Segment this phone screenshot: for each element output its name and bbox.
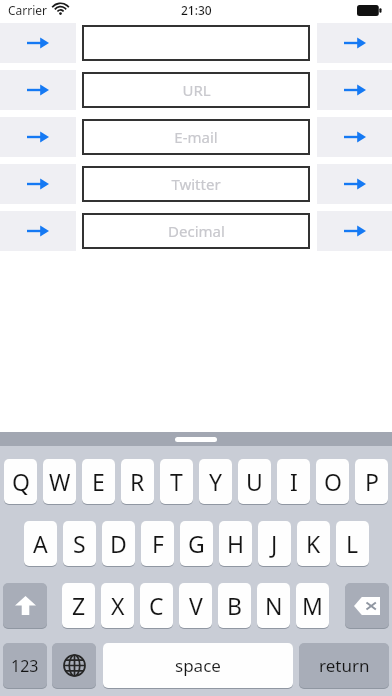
button[interactable]: Previous field	[0, 70, 76, 110]
button[interactable]: Next field	[317, 23, 392, 63]
button[interactable]: J	[258, 521, 291, 566]
button[interactable]	[3, 583, 47, 628]
staticText: Y	[209, 466, 223, 497]
staticText: space	[175, 654, 221, 677]
other: Shift	[3, 583, 47, 629]
button[interactable]: E	[82, 459, 115, 504]
staticText: N	[265, 590, 283, 621]
other: Change keyboard language	[52, 643, 96, 689]
staticText: O	[324, 466, 342, 497]
staticText: B	[227, 590, 242, 621]
staticText: X	[111, 590, 125, 621]
button[interactable]: Previous field	[0, 117, 76, 157]
button[interactable]: F	[141, 521, 174, 566]
button[interactable]: URL	[82, 72, 310, 108]
staticText: L	[346, 528, 359, 559]
staticText: U	[246, 466, 263, 497]
button[interactable]: O	[316, 459, 349, 504]
staticText: G	[188, 528, 205, 559]
staticText: V	[189, 590, 203, 621]
button[interactable]: Previous field	[0, 164, 76, 204]
staticText: I	[290, 466, 298, 497]
staticText: Carrier	[8, 2, 48, 18]
button[interactable]: space	[103, 643, 293, 688]
staticText: URL	[182, 80, 211, 100]
staticText: J	[271, 528, 278, 559]
button[interactable]: Next field	[317, 117, 392, 157]
staticText: S	[73, 528, 86, 559]
button[interactable]: Next field	[317, 211, 392, 251]
button[interactable]: 123	[3, 643, 47, 688]
button[interactable]: Previous field	[0, 211, 76, 251]
staticText: F	[152, 528, 164, 559]
staticText: 21:30	[181, 2, 212, 18]
staticText: Q	[12, 466, 30, 497]
button[interactable]	[52, 643, 96, 688]
staticText: M	[302, 590, 323, 621]
staticText: W	[49, 466, 71, 497]
staticText: A	[33, 528, 48, 559]
button[interactable]: T	[160, 459, 193, 504]
button[interactable]: Y	[199, 459, 232, 504]
button[interactable]: H	[219, 521, 252, 566]
staticText: Twitter	[171, 174, 221, 194]
staticText: C	[149, 590, 164, 621]
other: Backspace	[345, 583, 389, 629]
button[interactable]: return	[299, 643, 389, 688]
button[interactable]: P	[355, 459, 388, 504]
button[interactable]: M	[296, 583, 329, 628]
button[interactable]: Previous field	[0, 23, 76, 63]
button[interactable]: Next field	[317, 70, 392, 110]
staticText: Z	[72, 590, 86, 621]
button[interactable]: D	[102, 521, 135, 566]
button[interactable]: L	[336, 521, 369, 566]
staticText: 123	[11, 655, 39, 677]
staticText: R	[130, 466, 145, 497]
button[interactable]: C	[140, 583, 173, 628]
button[interactable]: U	[238, 459, 271, 504]
button[interactable]: R	[121, 459, 154, 504]
button[interactable]: G	[180, 521, 213, 566]
button[interactable]: N	[257, 583, 290, 628]
staticText: D	[110, 528, 127, 559]
button[interactable]: K	[297, 521, 330, 566]
button[interactable]: S	[63, 521, 96, 566]
button[interactable]: W	[43, 459, 76, 504]
staticText: E	[92, 466, 105, 497]
button[interactable]: Z	[62, 583, 95, 628]
button[interactable]: I	[277, 459, 310, 504]
button[interactable]	[82, 25, 310, 61]
staticText: Decimal	[168, 221, 225, 241]
staticText: E-mail	[174, 127, 218, 147]
button[interactable]	[345, 583, 389, 628]
button[interactable]: E-mail	[82, 119, 310, 155]
button[interactable]: Decimal	[82, 213, 310, 249]
button[interactable]: Q	[4, 459, 37, 504]
staticText: H	[227, 528, 245, 559]
staticText: return	[319, 654, 370, 677]
button[interactable]: B	[218, 583, 251, 628]
button[interactable]: Twitter	[82, 166, 310, 202]
button[interactable]: V	[179, 583, 212, 628]
staticText: K	[306, 528, 321, 559]
staticText: P	[365, 466, 379, 497]
button[interactable]: A	[24, 521, 57, 566]
button[interactable]: Hide keyboard	[175, 437, 217, 442]
button[interactable]: Next field	[317, 164, 392, 204]
staticText: T	[170, 466, 183, 497]
button[interactable]: X	[101, 583, 134, 628]
